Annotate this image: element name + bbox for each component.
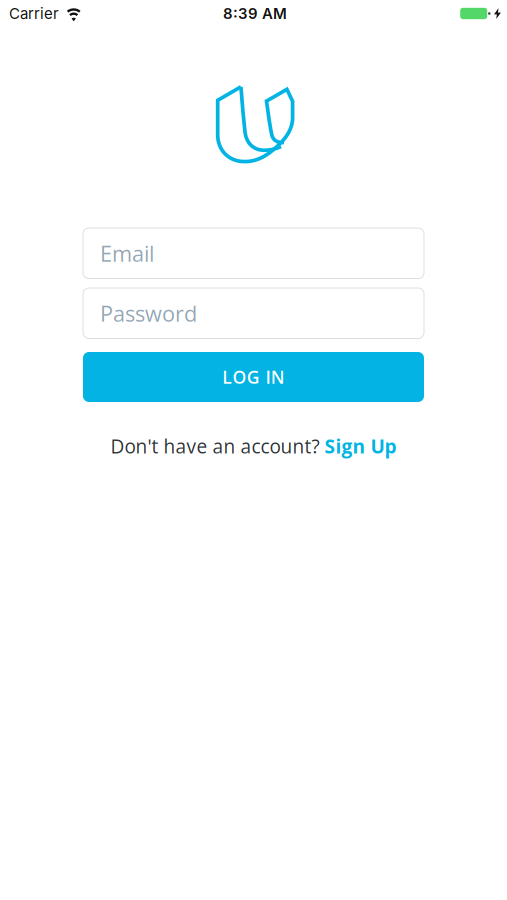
staticText: Password xyxy=(100,298,197,328)
staticText: LOG IN xyxy=(222,365,285,389)
button[interactable]: LOG IN xyxy=(83,352,424,402)
staticText: Email xyxy=(100,238,154,268)
button[interactable]: Sign Up xyxy=(324,433,396,459)
button[interactable]: Password xyxy=(83,288,424,338)
staticText: Don't have an account? xyxy=(110,433,319,459)
staticText: Carrier xyxy=(9,4,59,22)
staticText: Sign Up xyxy=(324,433,396,459)
button[interactable]: Email xyxy=(83,228,424,278)
staticText: 8:39 AM xyxy=(223,4,287,23)
